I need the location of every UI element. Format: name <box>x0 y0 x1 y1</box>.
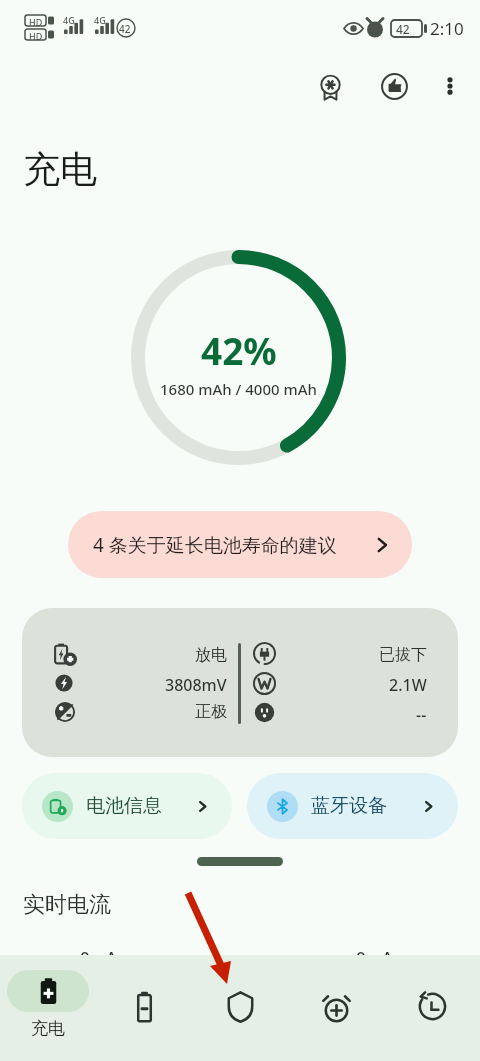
button[interactable]: Alarm <box>288 955 384 1061</box>
button[interactable]: 充电 <box>7 955 89 1018</box>
staticText: 42% <box>201 325 277 375</box>
staticText: 蓝牙设备 <box>311 794 387 818</box>
staticText: 42 <box>119 22 131 36</box>
button[interactable]: More options <box>428 64 472 108</box>
staticText: 0mA <box>356 946 393 969</box>
staticText: 42 <box>396 21 410 37</box>
staticText: 4 条关于延长电池寿命的建议 <box>93 532 337 558</box>
button[interactable]: History <box>384 955 480 1061</box>
staticText: 4G <box>94 14 106 26</box>
staticText: 放电 <box>195 645 227 665</box>
staticText: 2:10 <box>430 17 464 40</box>
button[interactable]: Battery <box>96 955 192 1061</box>
staticText: 实时电流 <box>23 891 111 919</box>
staticText: HD <box>29 30 43 42</box>
button[interactable]: 电池信息 <box>22 773 232 839</box>
staticText: 充电 <box>23 146 97 193</box>
staticText: HD <box>29 16 43 28</box>
staticText: 2.1W <box>389 674 427 696</box>
button[interactable]: 蓝牙设备 <box>247 773 458 839</box>
button[interactable]: 4 条关于延长电池寿命的建议 <box>68 511 412 578</box>
staticText: 电池信息 <box>86 794 162 818</box>
staticText: 充电 <box>31 1018 65 1039</box>
staticText: -- <box>416 704 427 726</box>
button[interactable]: Protection <box>192 955 288 1061</box>
staticText: 已拔下 <box>379 645 427 665</box>
button[interactable]: Rewards <box>308 64 352 108</box>
staticText: 4G <box>63 14 75 26</box>
staticText: 正极 <box>195 702 227 722</box>
button[interactable]: Feedback <box>372 64 416 108</box>
staticText: 0mA <box>80 946 117 969</box>
staticText: 3808mV <box>165 674 227 696</box>
staticText: 1680 mAh / 4000 mAh <box>160 379 317 399</box>
